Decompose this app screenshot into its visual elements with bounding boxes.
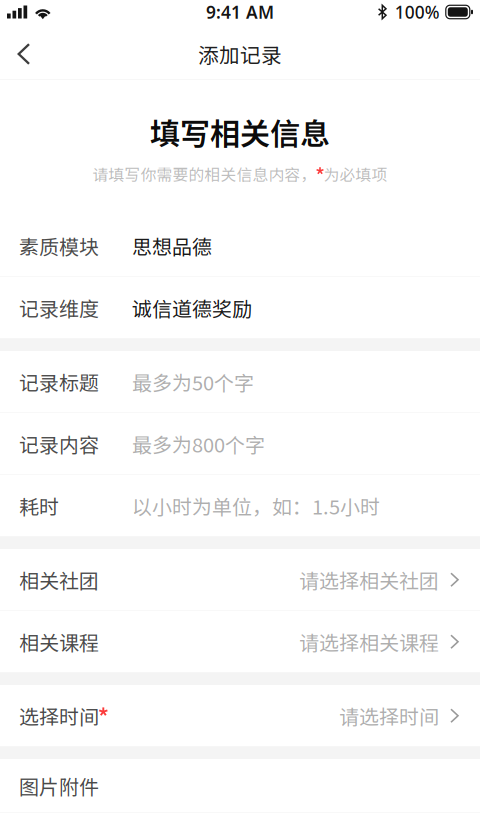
button[interactable]: 素质模块 [0,215,480,276]
staticText: 图片附件 [19,771,99,800]
staticText: 诚信道德奖励 [132,293,252,322]
staticText: 请选择相关课程 [299,627,439,656]
staticText: 请选择时间 [339,701,439,730]
staticText: 以小时为单位，如：1.5小时 [132,491,380,520]
staticText: 相关社团 [19,565,99,594]
button[interactable]: 相关社团 [0,549,480,610]
button[interactable]: 记录内容 [0,413,480,474]
button[interactable]: 相关课程 [0,611,480,672]
button[interactable]: 记录维度 [0,277,480,338]
staticText: 添加记录 [198,39,282,69]
button[interactable]: 选择时间 [0,685,480,746]
staticText: 记录内容 [19,429,99,458]
staticText: 请填写你需要的相关信息内容， [92,162,316,185]
staticText: 最多为800个字 [132,429,265,458]
button[interactable]: Back [0,32,48,80]
button[interactable]: 耗时 [0,475,480,536]
staticText: 最多为50个字 [132,367,254,396]
staticText: 相关课程 [19,627,99,656]
button[interactable]: 记录标题 [0,351,480,412]
staticText: 思想品德 [132,231,212,260]
staticText: 100% [395,0,440,23]
staticText: 9:41 AM [206,0,274,23]
staticText: 填写相关信息 [150,110,330,153]
button[interactable]: 图片附件 [0,759,480,812]
staticText: 素质模块 [19,231,99,260]
staticText: 为必填项 [324,162,388,185]
staticText: 耗时 [19,491,59,520]
staticText: 记录标题 [19,367,99,396]
staticText: 选择时间 [19,701,99,730]
staticText: 请选择相关社团 [299,565,439,594]
staticText: 记录维度 [19,293,99,322]
